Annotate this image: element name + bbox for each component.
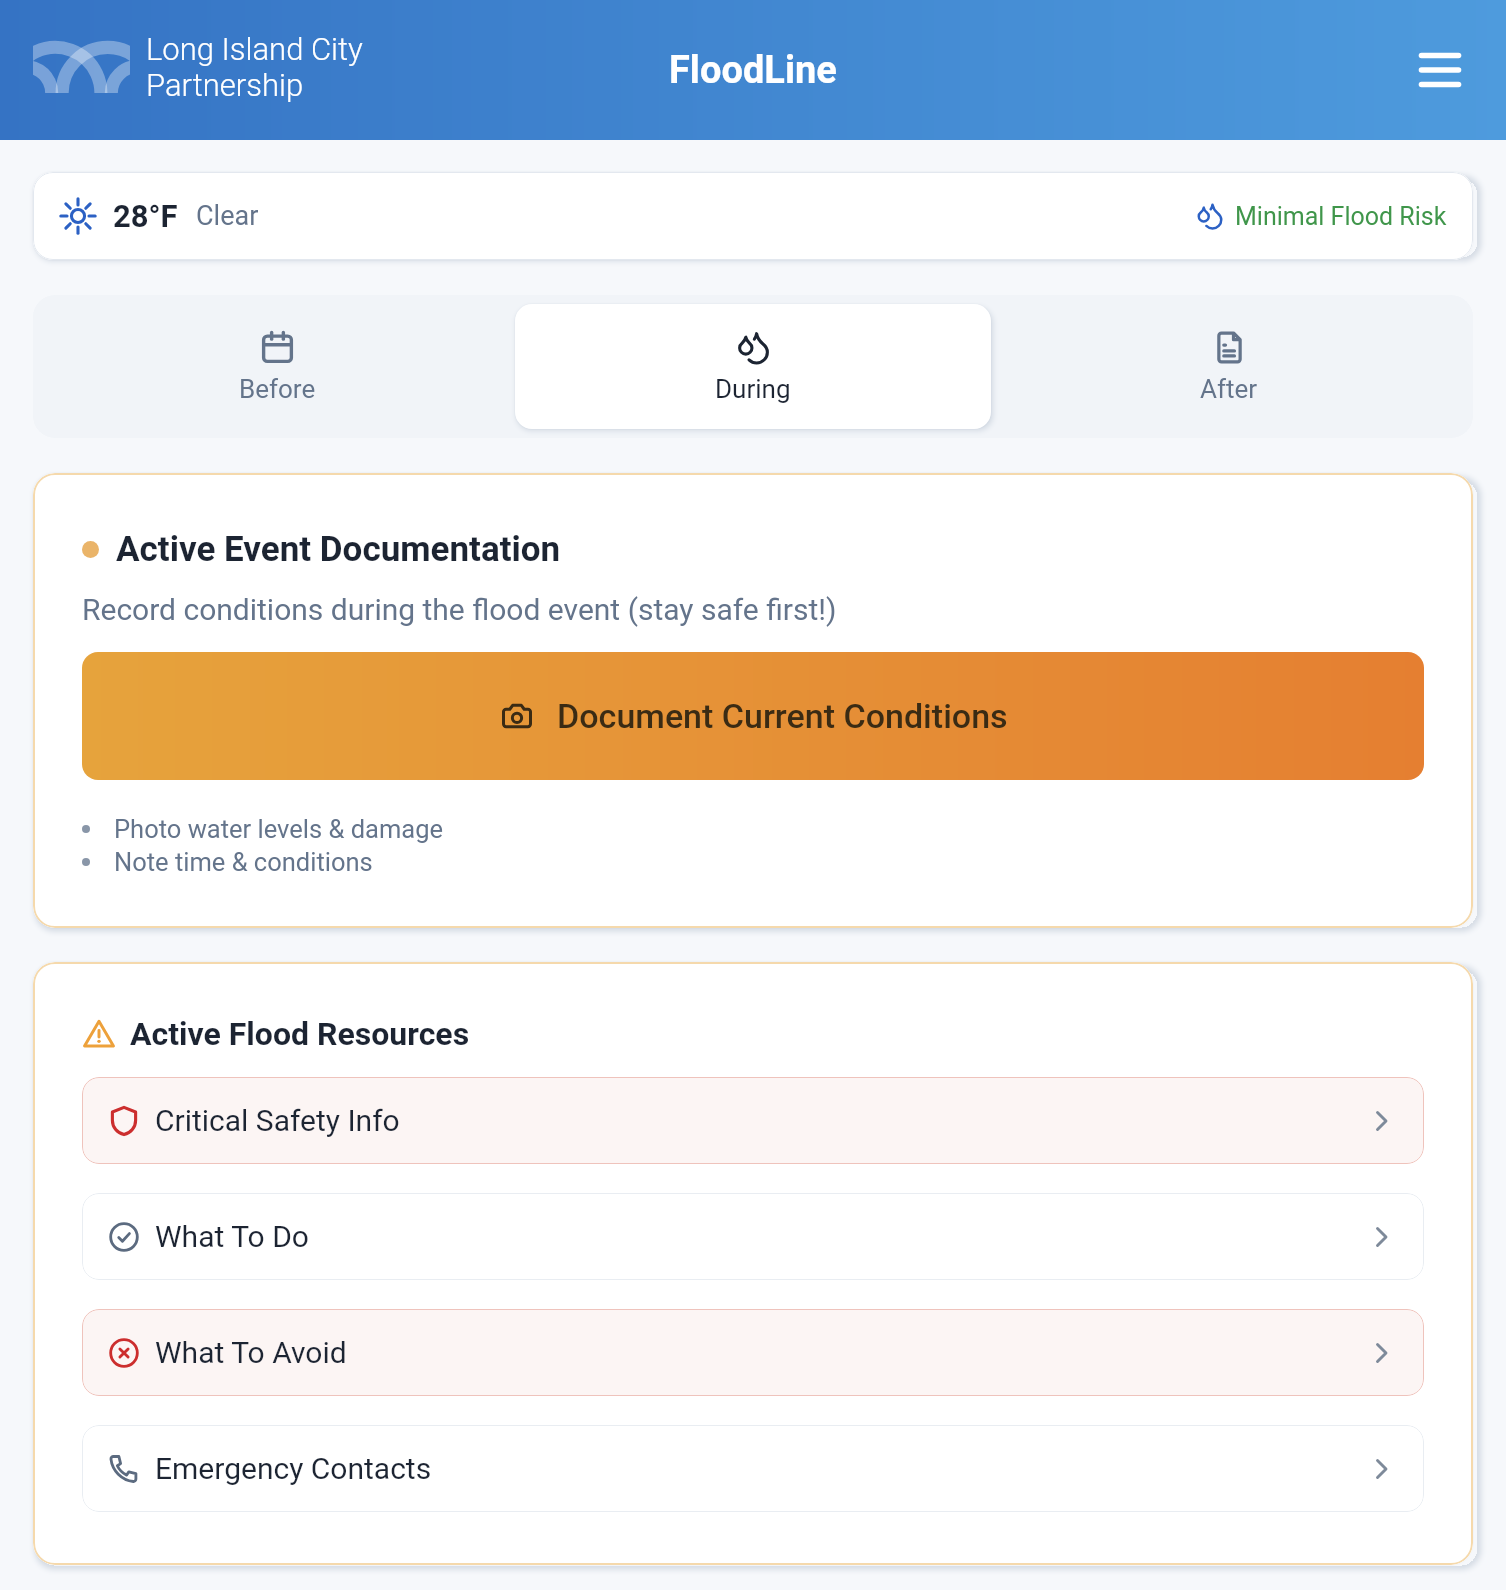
staticText: Minimal Flood Risk: [1235, 202, 1447, 231]
staticText: Document Current Conditions: [557, 696, 1008, 736]
staticText: What To Do: [155, 1219, 309, 1254]
staticText: Photo water levels & damage: [114, 814, 443, 844]
staticText: After: [1200, 374, 1258, 404]
staticText: Emergency Contacts: [155, 1451, 432, 1486]
button[interactable]: During: [515, 304, 991, 429]
button[interactable]: Before: [39, 304, 515, 429]
staticText: Long Island City: [146, 31, 363, 67]
staticText: FloodLine: [669, 48, 837, 93]
staticText: Note time & conditions: [114, 847, 373, 877]
button[interactable]: Menu: [1410, 40, 1470, 100]
button[interactable]: After: [991, 304, 1467, 429]
staticText: Before: [239, 374, 316, 404]
button[interactable]: What To Do: [82, 1193, 1424, 1280]
button[interactable]: Emergency Contacts: [82, 1425, 1424, 1512]
staticText: During: [715, 374, 791, 404]
staticText: 28°F: [113, 198, 178, 234]
staticText: Record conditions during the flood event…: [82, 592, 837, 627]
staticText: Partnership: [146, 67, 304, 103]
button[interactable]: What To Avoid: [82, 1309, 1424, 1396]
staticText: Critical Safety Info: [155, 1103, 400, 1138]
staticText: What To Avoid: [155, 1335, 347, 1370]
button[interactable]: Critical Safety Info: [82, 1077, 1424, 1164]
button[interactable]: Document Current Conditions: [82, 652, 1424, 780]
staticText: Active Flood Resources: [130, 1015, 470, 1053]
staticText: Active Event Documentation: [116, 529, 561, 570]
staticText: Clear: [196, 200, 259, 232]
